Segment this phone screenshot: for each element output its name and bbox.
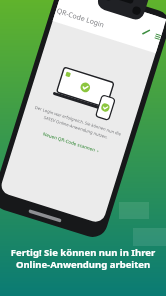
button[interactable]	[0, 0, 166, 296]
